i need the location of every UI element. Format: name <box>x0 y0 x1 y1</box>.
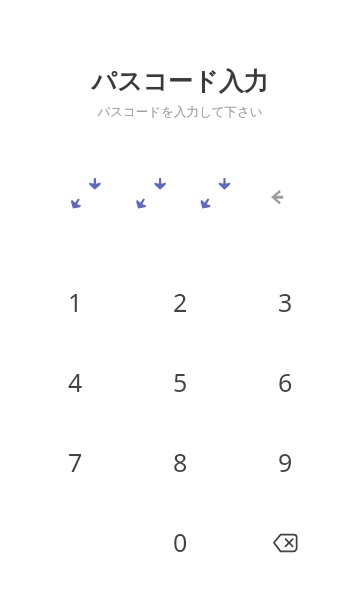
staticText: 0 <box>173 525 188 559</box>
staticText: 6 <box>278 365 293 399</box>
button[interactable]: 1 <box>23 262 128 342</box>
button[interactable]: 4 <box>23 342 128 422</box>
staticText: 7 <box>68 445 83 479</box>
staticText: パスコードを入力して下さい <box>97 104 263 120</box>
staticText: 8 <box>173 445 188 479</box>
button[interactable]: 0 <box>128 502 233 582</box>
staticText: 3 <box>278 285 293 319</box>
staticText: 4 <box>68 365 83 399</box>
button[interactable]: 5 <box>128 342 233 422</box>
button[interactable]: Backspace <box>233 502 338 582</box>
staticText: 2 <box>173 285 188 319</box>
button[interactable]: 8 <box>128 422 233 502</box>
staticText: 1 <box>68 285 83 319</box>
button[interactable]: 9 <box>233 422 338 502</box>
staticText: 5 <box>173 365 188 399</box>
button[interactable]: 3 <box>233 262 338 342</box>
staticText: 9 <box>278 445 293 479</box>
button[interactable]: 7 <box>23 422 128 502</box>
button[interactable]: 6 <box>233 342 338 422</box>
button[interactable]: Backspace <box>274 530 298 554</box>
button[interactable]: 2 <box>128 262 233 342</box>
staticText: パスコード入力 <box>91 66 269 97</box>
